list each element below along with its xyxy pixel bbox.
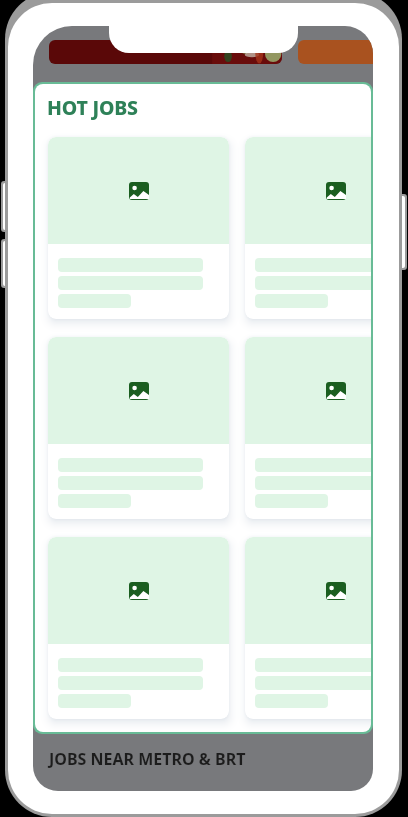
other: Hardware button <box>3 241 11 286</box>
staticText: HOT JOBS <box>47 94 138 121</box>
other: Image placeholder <box>326 182 346 200</box>
other: Image placeholder <box>326 382 346 400</box>
other: Image placeholder <box>129 382 149 400</box>
button[interactable]: JOBS NEAR METRO & BRT <box>33 730 373 787</box>
other: Hardware button <box>397 196 405 268</box>
button[interactable]: Image placeholder <box>245 137 371 319</box>
button[interactable]: Image placeholder <box>48 137 229 319</box>
other: Image placeholder <box>129 182 149 200</box>
other: Image placeholder <box>326 582 346 600</box>
other: Hardware button <box>3 183 11 230</box>
button[interactable]: Image placeholder <box>245 337 371 519</box>
button[interactable]: Image placeholder <box>48 337 229 519</box>
other: Image placeholder <box>129 582 149 600</box>
button[interactable]: Image placeholder <box>48 537 229 719</box>
staticText: JOBS NEAR METRO & BRT <box>49 748 246 770</box>
button[interactable] <box>49 40 282 64</box>
button[interactable]: Image placeholder <box>245 537 371 719</box>
